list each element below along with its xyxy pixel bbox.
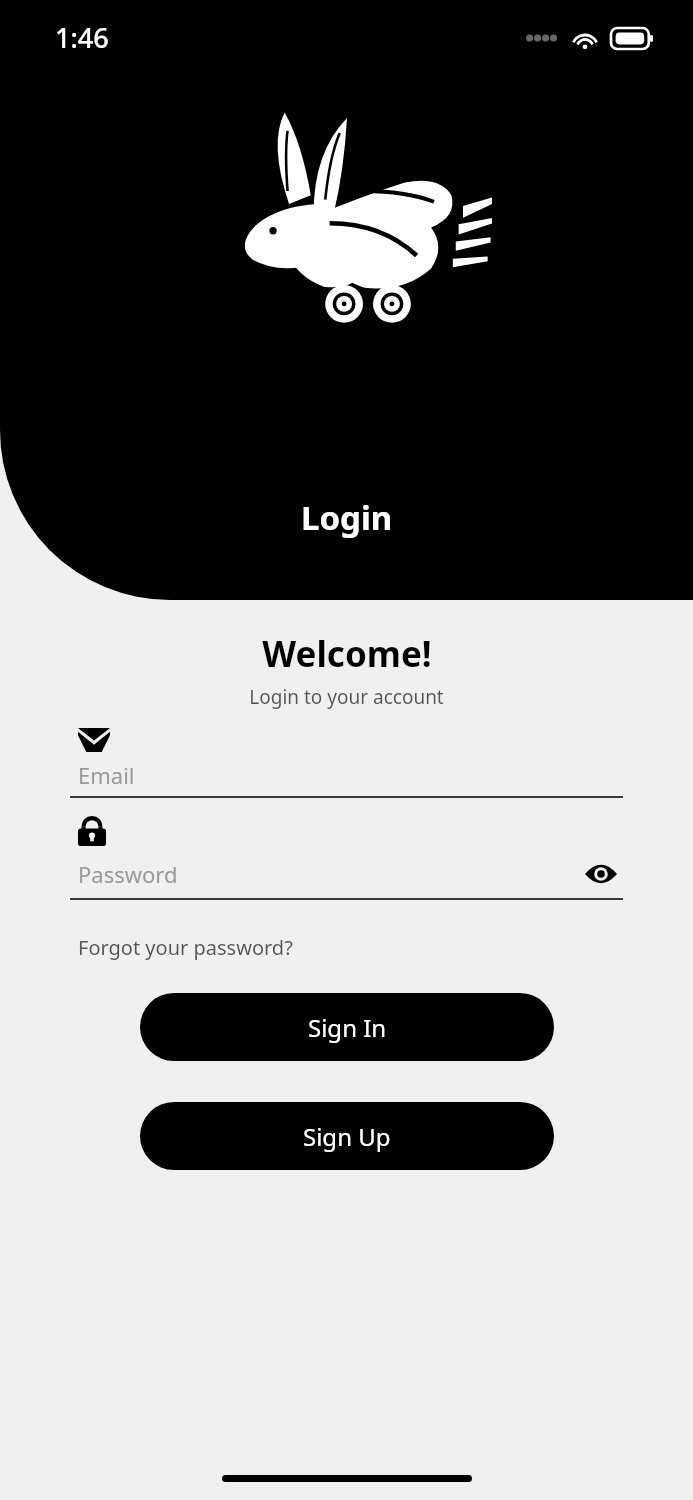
button[interactable]: Forgot your password?: [70, 930, 293, 965]
button[interactable]: Email: [70, 728, 623, 798]
staticText: 1:46: [55, 19, 109, 56]
button[interactable]: Sign In: [140, 993, 554, 1061]
staticText: Password: [78, 859, 579, 889]
staticText: Welcome!: [262, 630, 432, 678]
staticText: Sign In: [308, 1011, 387, 1044]
staticText: Login to your account: [249, 684, 444, 710]
staticText: Sign Up: [303, 1120, 391, 1153]
staticText: Email: [78, 760, 135, 790]
button[interactable]: Sign Up: [140, 1102, 554, 1170]
staticText: Login: [301, 495, 393, 540]
button[interactable]: Password: [70, 816, 623, 900]
button[interactable]: Show password: [579, 852, 623, 896]
